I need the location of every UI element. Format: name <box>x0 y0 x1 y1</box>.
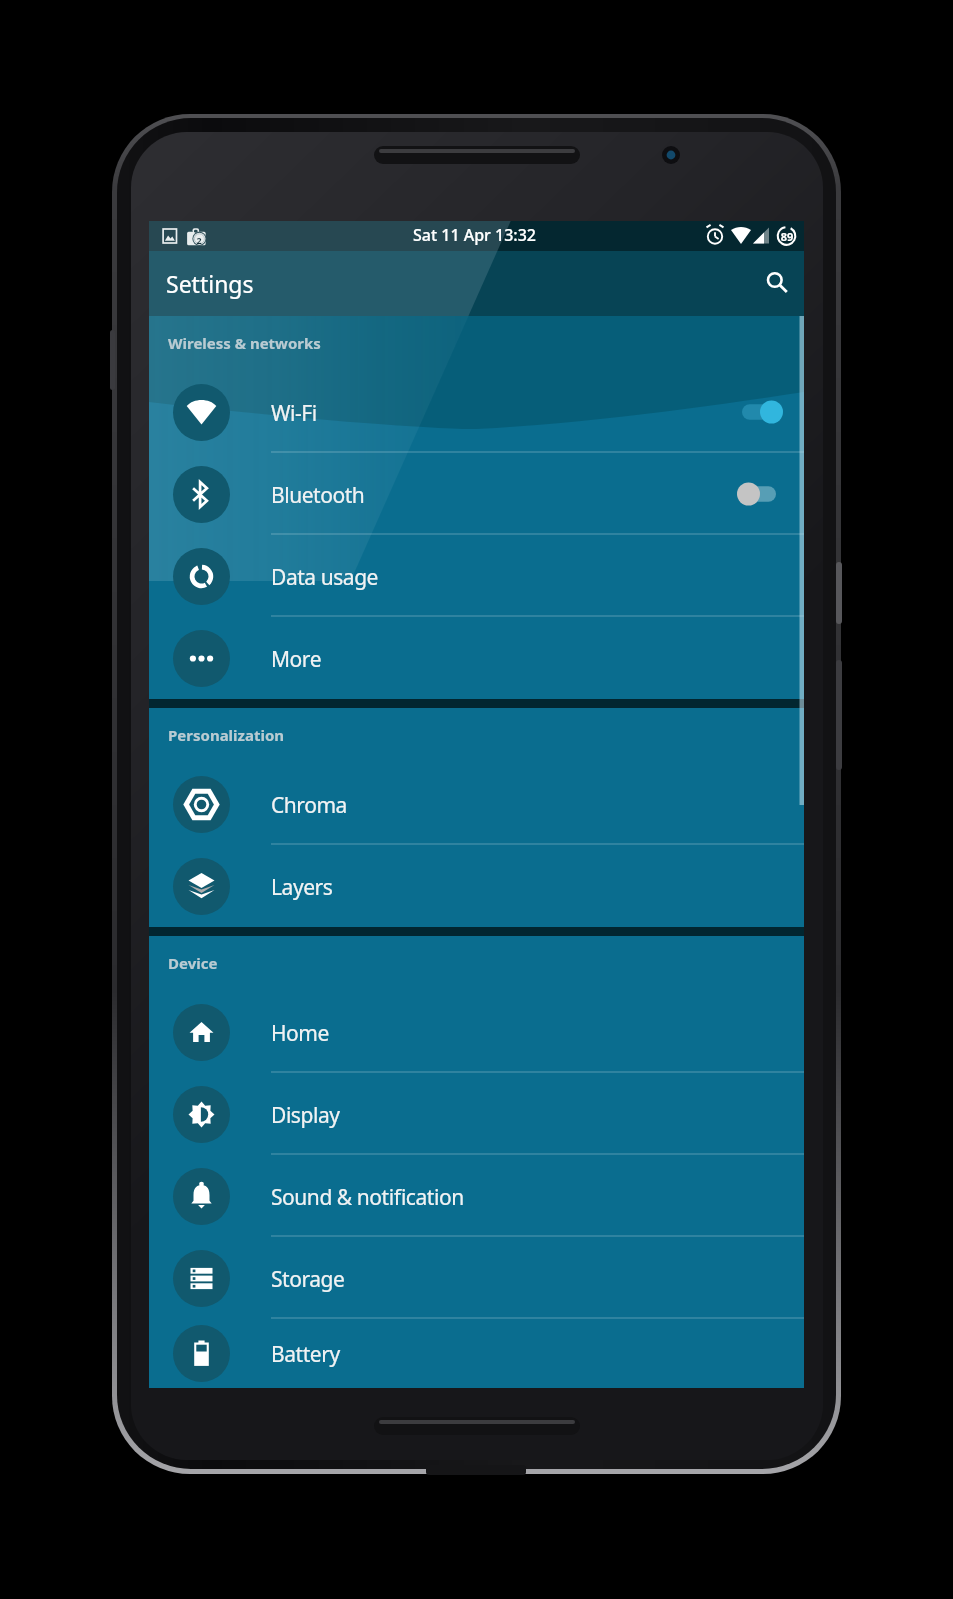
staticText: Battery <box>271 1340 340 1369</box>
staticText: 2 <box>193 234 205 246</box>
button[interactable]: Sound & notification <box>149 1155 804 1237</box>
button[interactable]: Battery <box>149 1319 804 1388</box>
staticText: 89 <box>779 229 795 244</box>
staticText: Layers <box>271 873 333 902</box>
staticText: Wireless & networks <box>168 333 321 353</box>
button[interactable]: Chroma <box>149 763 804 845</box>
staticText: Bluetooth <box>271 481 365 510</box>
staticText: Display <box>271 1101 340 1130</box>
staticText: Sound & notification <box>271 1183 464 1212</box>
button[interactable]: Layers <box>149 845 804 927</box>
button[interactable]: More <box>149 617 804 699</box>
staticText: Home <box>271 1019 329 1048</box>
staticText: Storage <box>271 1265 345 1294</box>
staticText: Chroma <box>271 791 347 820</box>
button[interactable]: Search <box>751 257 799 305</box>
staticText: Settings <box>166 268 254 299</box>
button[interactable]: Storage <box>149 1237 804 1319</box>
staticText: Wi-Fi <box>271 399 317 428</box>
button[interactable]: Bluetooth <box>149 453 804 535</box>
staticText: More <box>271 645 322 674</box>
button[interactable]: Display <box>149 1073 804 1155</box>
staticText: Personalization <box>168 725 285 745</box>
staticText: Device <box>168 953 218 973</box>
button[interactable]: Data usage <box>149 535 804 617</box>
button[interactable]: Home <box>149 991 804 1073</box>
staticText: Sat 11 Apr 13:32 <box>413 224 536 246</box>
button[interactable]: Wi-Fi <box>149 371 804 453</box>
staticText: Data usage <box>271 563 379 592</box>
